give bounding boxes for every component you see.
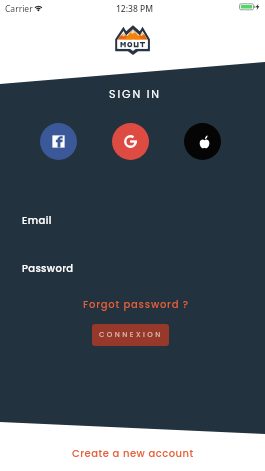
- button[interactable]: Sign in with Google: [112, 123, 149, 160]
- button[interactable]: Password: [0, 256, 265, 280]
- staticText: Password: [22, 261, 74, 275]
- button[interactable]: CONNEXION: [92, 324, 169, 346]
- staticText: SIGN IN: [109, 86, 161, 101]
- staticText: CONNEXION: [99, 330, 163, 340]
- staticText: Email: [22, 213, 52, 227]
- staticText: 12:38 PM: [116, 3, 153, 15]
- button[interactable]: Email: [0, 208, 265, 232]
- button[interactable]: Create a new account: [0, 444, 265, 461]
- button[interactable]: Forgot password ?: [3, 294, 265, 314]
- button[interactable]: Sign in with Facebook: [40, 123, 77, 160]
- staticText: Forgot password ?: [83, 297, 189, 311]
- button[interactable]: Sign in with Apple: [184, 123, 221, 160]
- staticText: Create a new account: [72, 446, 194, 460]
- staticText: Carrier: [5, 3, 33, 15]
